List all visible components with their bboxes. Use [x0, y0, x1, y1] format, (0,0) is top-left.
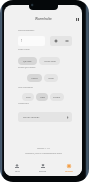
button[interactable]: Action Code	[39, 57, 60, 65]
staticText: Never	[48, 77, 54, 80]
staticText: Dark	[26, 96, 31, 99]
staticText: Warmhaltezeit:	[18, 29, 35, 32]
staticText: Light	[40, 96, 45, 99]
staticText: 1	[21, 39, 23, 43]
staticText: QR Code	[23, 60, 32, 63]
button[interactable]: Always	[27, 74, 42, 82]
button[interactable]: More options	[74, 16, 80, 22]
button[interactable]: Dark	[22, 93, 34, 101]
button[interactable]: 1	[18, 36, 45, 46]
staticText: Send	[15, 170, 20, 173]
staticText: Settings	[65, 170, 73, 173]
staticText: Code Type:	[18, 48, 30, 51]
button[interactable]: System	[50, 93, 64, 101]
staticText: Receive	[39, 170, 47, 173]
staticText: Version 1.1.0	[37, 147, 50, 150]
button[interactable]: Settings	[56, 160, 82, 176]
staticText: Always	[31, 77, 38, 80]
staticText: Action Code	[44, 60, 56, 63]
staticText: Attention, this is a development build	[25, 152, 62, 155]
staticText: App Theming:	[18, 86, 34, 89]
button[interactable]: Never	[44, 74, 58, 82]
button[interactable]: Light	[36, 93, 48, 101]
button[interactable]: Decrease	[61, 36, 72, 46]
button[interactable]: Increase	[50, 36, 61, 46]
button[interactable]: QR Code	[18, 57, 37, 65]
staticText: System	[53, 96, 61, 99]
button[interactable]: Receive	[30, 160, 56, 176]
staticText: Warmhalte	[35, 17, 52, 21]
button[interactable]: Server Settings	[18, 112, 72, 122]
button[interactable]: Send	[4, 160, 30, 176]
staticText: Show QR Codes:	[18, 66, 36, 69]
staticText: Server Settings	[23, 116, 40, 119]
staticText: Advanced	[18, 102, 29, 105]
